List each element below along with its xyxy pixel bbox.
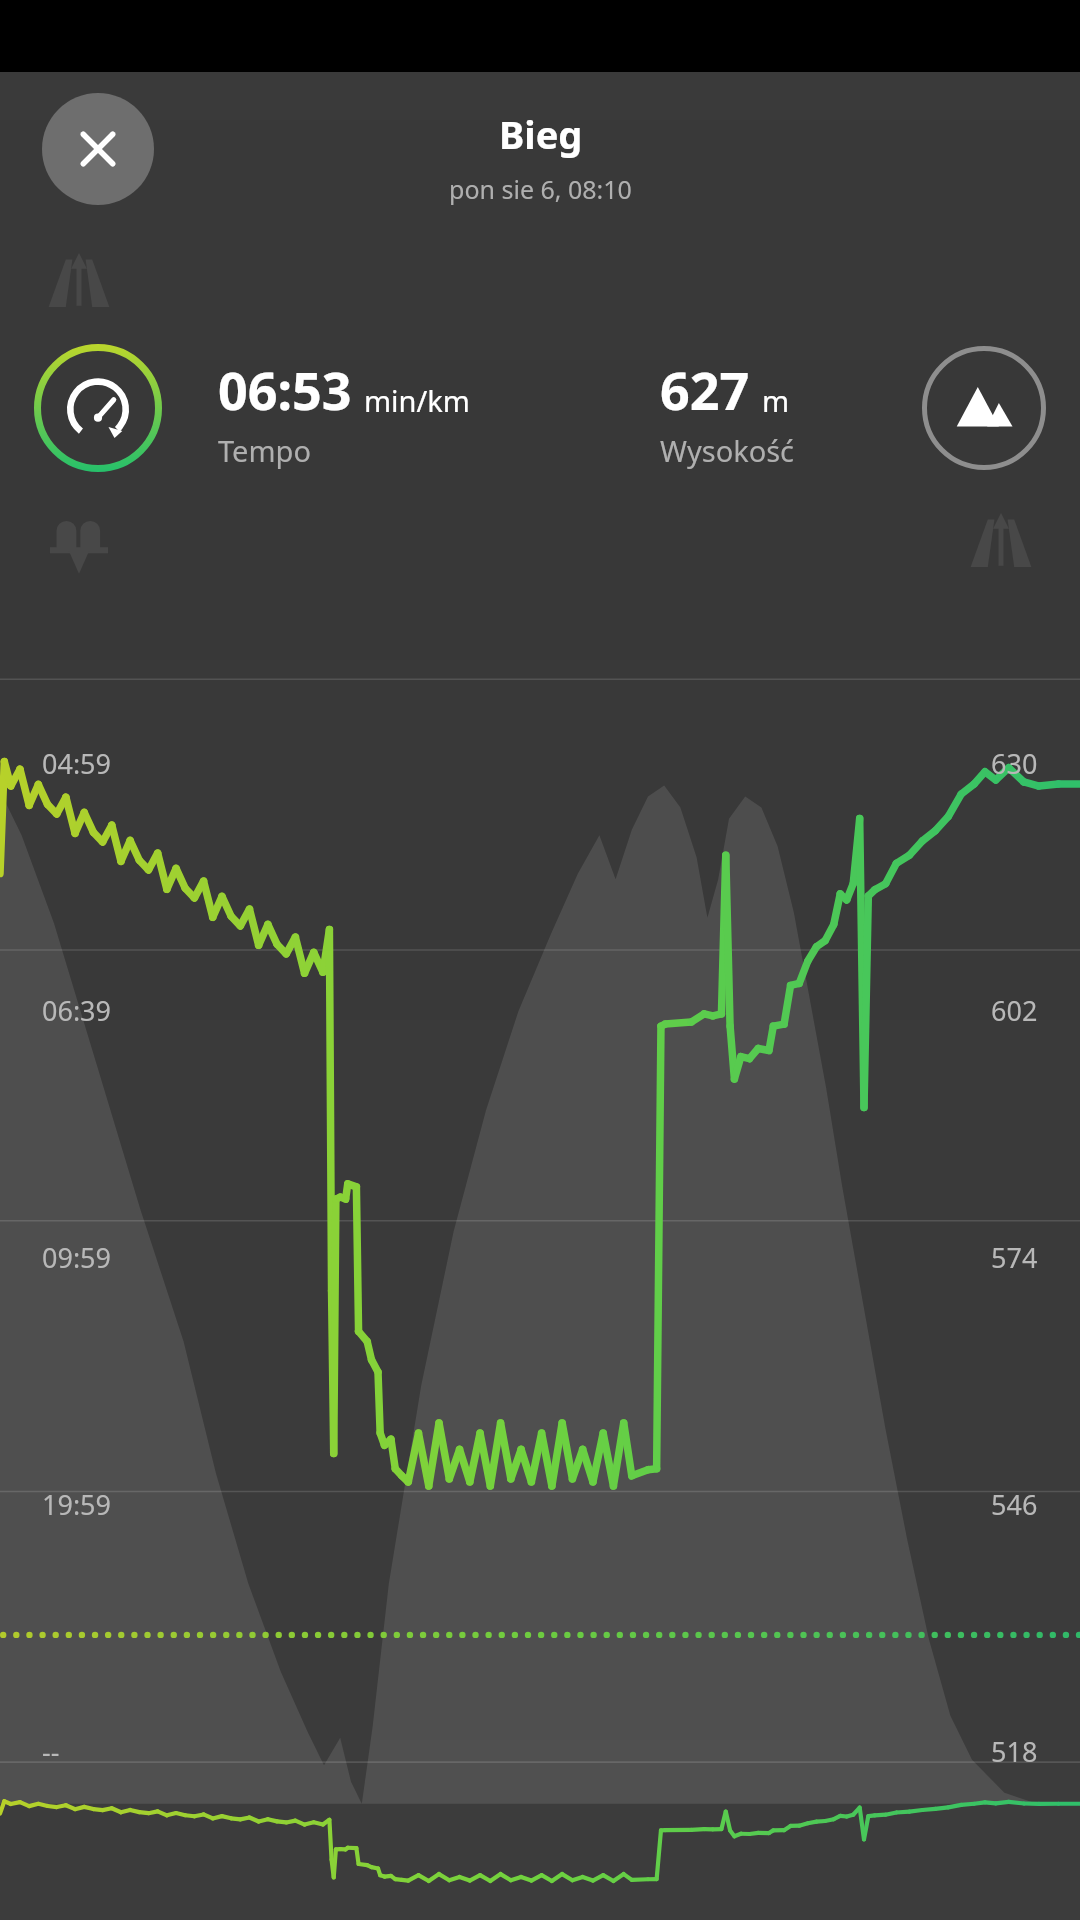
staticText: pon sie 6, 08:10: [449, 172, 632, 206]
staticText: 06:53: [218, 354, 352, 425]
staticText: m: [762, 381, 790, 420]
staticText: 06:39: [42, 992, 112, 1029]
staticText: min/km: [364, 381, 470, 420]
staticText: 574: [991, 1239, 1038, 1276]
staticText: 546: [991, 1486, 1038, 1523]
staticText: 602: [991, 992, 1038, 1029]
staticText: 630: [991, 745, 1038, 782]
staticText: 19:59: [42, 1486, 112, 1523]
staticText: Tempo: [218, 431, 311, 470]
staticText: 04:59: [42, 745, 112, 782]
staticText: 518: [991, 1733, 1038, 1770]
staticText: Bieg: [499, 108, 583, 160]
button[interactable]: Wysokość: [922, 346, 1046, 470]
button[interactable]: Tempo: [34, 344, 162, 472]
staticText: 09:59: [42, 1239, 112, 1276]
staticText: --: [42, 1733, 60, 1770]
staticText: Wysokość: [660, 431, 795, 470]
staticText: 627: [660, 354, 750, 425]
button[interactable]: Zamknij: [42, 93, 154, 205]
